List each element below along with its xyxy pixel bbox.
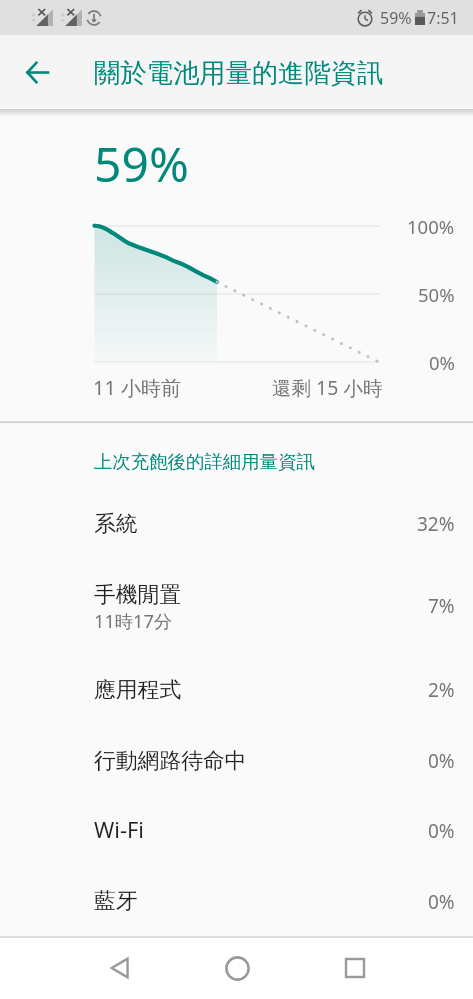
staticText: 應用程式 [94,676,182,703]
staticText: 2% [428,677,455,703]
button[interactable]: Back [90,938,150,998]
staticText: 11 小時前 [93,374,182,401]
button[interactable]: 系統 [0,487,473,558]
staticText: 100% [407,214,455,239]
staticText: 還剩 15 小時 [272,374,383,401]
button[interactable]: Wi-Fi [0,783,473,853]
staticText: 手機閒置 [94,581,182,608]
staticText: 藍牙 [94,887,138,914]
staticText: 系統 [94,510,138,537]
staticText: 50% [418,282,455,307]
button[interactable]: 行動網路待命中 [0,712,473,783]
staticText: 0% [428,889,455,915]
staticText: 7:51 [427,7,459,29]
staticText: 行動網路待命中 [94,747,247,774]
staticText: 關於電池用量的進階資訊 [94,57,384,90]
staticText: 59% [94,131,189,196]
button[interactable]: Recent apps [325,938,385,998]
staticText: 0% [428,818,455,844]
staticText: 32% [417,511,455,537]
staticText: 7% [428,593,455,619]
button[interactable]: 藍牙 [0,853,473,924]
button[interactable]: 應用程式 [0,641,473,712]
staticText: 0% [429,350,455,375]
staticText: Wi-Fi [94,815,144,845]
staticText: 59% [380,7,412,29]
staticText: 0% [428,748,455,774]
button[interactable]: Back [13,48,61,96]
button[interactable]: 手機閒置 [0,558,473,641]
staticText: 上次充飽後的詳細用量資訊 [94,450,315,473]
staticText: 11時17分 [94,609,172,634]
button[interactable]: Home [207,938,267,998]
